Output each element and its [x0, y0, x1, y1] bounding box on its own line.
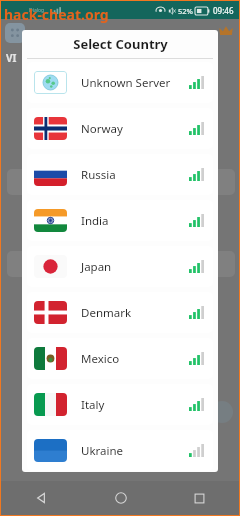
- staticText: Dialog: [29, 7, 45, 14]
- other: Signal strength: [189, 398, 204, 411]
- staticText: Norway: [81, 121, 189, 137]
- staticText: 09:46: [213, 5, 234, 16]
- button[interactable]: Norway: [27, 108, 213, 149]
- staticText: Ukraine: [81, 443, 189, 459]
- other: Signal strength: [189, 214, 204, 227]
- button[interactable]: Mexico: [27, 338, 213, 379]
- staticText: Denmark: [81, 305, 189, 321]
- button[interactable]: Russia: [27, 154, 213, 195]
- button[interactable]: Italy: [27, 384, 213, 425]
- button[interactable]: Unknown Server: [27, 62, 213, 103]
- button[interactable]: Denmark: [27, 292, 213, 333]
- staticText: India: [81, 213, 189, 229]
- button[interactable]: Recent apps: [160, 481, 239, 515]
- other: Signal strength: [189, 306, 204, 319]
- staticText: Select Country: [73, 35, 168, 53]
- other: Signal strength: [189, 76, 204, 89]
- staticText: VI: [6, 51, 17, 65]
- staticText: Unknown Server: [81, 75, 189, 91]
- staticText: Russia: [81, 167, 189, 183]
- button[interactable]: India: [27, 200, 213, 241]
- button[interactable]: Japan: [27, 246, 213, 287]
- other: Signal strength: [189, 352, 204, 365]
- staticText: Italy: [81, 397, 189, 413]
- other: Signal strength: [189, 444, 204, 457]
- button[interactable]: Ukraine: [27, 430, 213, 471]
- staticText: Japan: [81, 259, 189, 275]
- other: Signal strength: [189, 168, 204, 181]
- staticText: 52%: [178, 6, 193, 16]
- other: Signal strength: [189, 122, 204, 135]
- button[interactable]: Home: [81, 481, 160, 515]
- button[interactable]: Back: [1, 481, 81, 515]
- staticText: Mexico: [81, 351, 189, 367]
- staticText: hack-cheat.org: [4, 5, 109, 24]
- other: Signal strength: [189, 260, 204, 273]
